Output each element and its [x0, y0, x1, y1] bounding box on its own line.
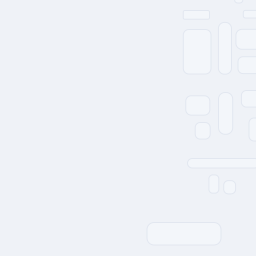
- button[interactable]: Search field: [187, 158, 256, 168]
- button[interactable]: Card 4: [238, 57, 256, 74]
- button[interactable]: Card 3: [236, 29, 256, 49]
- button[interactable]: Chip 1: [209, 175, 219, 193]
- button[interactable]: Card 1: [183, 29, 211, 74]
- button[interactable]: Card 8: [241, 90, 256, 107]
- button[interactable]: Card 6: [195, 122, 210, 139]
- button[interactable]: Card 7: [218, 92, 233, 134]
- button[interactable]: Heading: [183, 10, 209, 19]
- button[interactable]: Continue: [147, 222, 221, 245]
- button[interactable]: Status: [235, 0, 243, 3]
- button[interactable]: Card 2: [218, 22, 231, 74]
- button[interactable]: Chip 2: [224, 181, 236, 194]
- button[interactable]: Title: [243, 10, 256, 18]
- button[interactable]: Card 5: [186, 96, 210, 115]
- button[interactable]: Card 9: [249, 118, 256, 141]
